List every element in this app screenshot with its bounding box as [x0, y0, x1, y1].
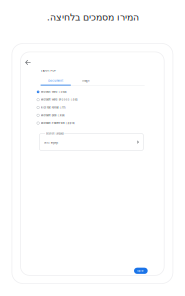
staticText: Export [137, 269, 144, 272]
button[interactable]: Microsoft Word 97-2003 (.doc) [35, 96, 144, 104]
staticText: Export PDF [41, 69, 57, 72]
button[interactable]: Microsoft Excel (.xlsx) [35, 111, 144, 119]
staticText: Microsoft Word 97-2003 (.doc) [41, 98, 78, 101]
button[interactable]: Detect language [39, 133, 143, 150]
staticText: Microsoft PowerPoint (.pptx) [41, 122, 75, 125]
staticText: המירו מסמכים בלחיצה. [46, 11, 138, 23]
button[interactable]: Document [41, 78, 71, 84]
button[interactable]: Microsoft Word (.docx) [35, 88, 144, 96]
staticText: Image [82, 79, 90, 82]
button[interactable]: Rich Text Format (.rtf) [35, 104, 144, 111]
staticText: Microsoft Word (.docx) [41, 90, 67, 93]
staticText: Document Language [46, 132, 64, 135]
staticText: Microsoft Excel (.xlsx) [41, 114, 65, 117]
button[interactable]: Back [25, 59, 31, 66]
staticText: Detect language [44, 142, 58, 144]
button[interactable]: Image [71, 78, 101, 84]
button[interactable]: Export [134, 268, 148, 274]
staticText: Rich Text Format (.rtf) [41, 106, 66, 109]
staticText: Document [48, 79, 63, 82]
button[interactable]: Microsoft PowerPoint (.pptx) [35, 119, 144, 127]
